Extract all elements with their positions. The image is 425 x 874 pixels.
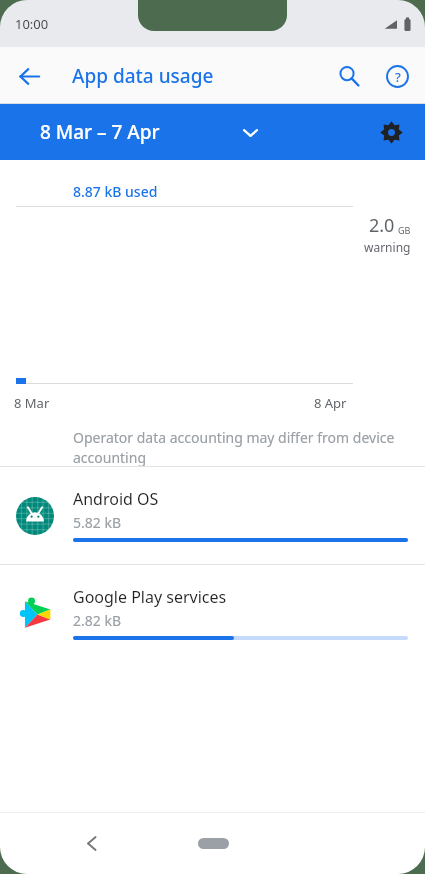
staticText: App data usage: [72, 63, 214, 89]
staticText: 10:00: [15, 15, 49, 33]
button[interactable]: Back: [72, 823, 112, 863]
button[interactable]: Android OS: [0, 467, 425, 564]
button[interactable]: Search: [327, 54, 371, 98]
staticText: Operator data accounting may differ from…: [73, 428, 401, 467]
staticText: GB: [398, 224, 411, 236]
staticText: 8.87 kB used: [73, 182, 158, 201]
staticText: 2.82 kB: [73, 611, 121, 630]
staticText: Google Play services: [73, 586, 227, 608]
staticText: 2.0: [369, 213, 395, 238]
staticText: ?: [395, 68, 401, 86]
staticText: 8 Mar: [14, 394, 50, 412]
staticText: 8 Mar – 7 Apr: [40, 119, 160, 145]
button[interactable]: 8 Mar – 7 Apr: [40, 119, 259, 145]
staticText: 5.82 kB: [73, 513, 121, 532]
button[interactable]: Home: [185, 829, 241, 857]
button[interactable]: Settings: [370, 111, 412, 153]
staticText: Android OS: [73, 488, 159, 510]
staticText: warning: [364, 239, 411, 255]
button[interactable]: Help: [375, 54, 419, 98]
button[interactable]: Back: [8, 55, 50, 97]
staticText: 8 Apr: [314, 394, 347, 412]
button[interactable]: Google Play services: [0, 565, 425, 662]
